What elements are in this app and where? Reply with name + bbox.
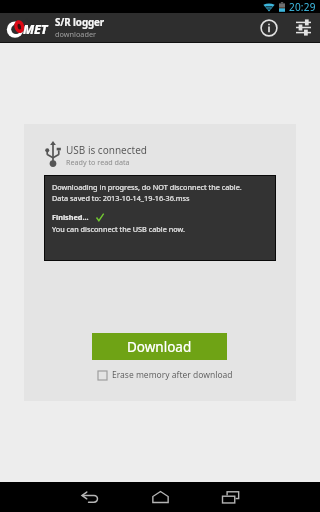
staticText: Download: [127, 338, 192, 356]
button[interactable]: Info: [253, 13, 285, 42]
button[interactable]: Back: [59, 482, 121, 512]
staticText: You can disconnect the USB cable now.: [52, 224, 185, 234]
staticText: downloader: [55, 29, 97, 39]
staticText: Ready to read data: [66, 157, 130, 167]
staticText: Finished...: [52, 212, 89, 222]
staticText: USB is connected: [66, 143, 147, 157]
button[interactable]: Settings: [287, 13, 319, 42]
button[interactable]: Recent apps: [199, 482, 261, 512]
staticText: 20:29: [289, 0, 316, 13]
staticText: Erase memory after download: [112, 369, 233, 381]
staticText: Data saved to: 2013-10-14_19-16-36.mss: [52, 193, 190, 203]
button[interactable]: Download: [92, 333, 227, 360]
staticText: Downloading in progress, do NOT disconne…: [52, 182, 242, 192]
staticText: MET: [23, 21, 48, 38]
button[interactable]: Erase memory after download: [98, 369, 233, 381]
staticText: S/R logger: [55, 16, 105, 29]
button[interactable]: Home: [129, 482, 191, 512]
